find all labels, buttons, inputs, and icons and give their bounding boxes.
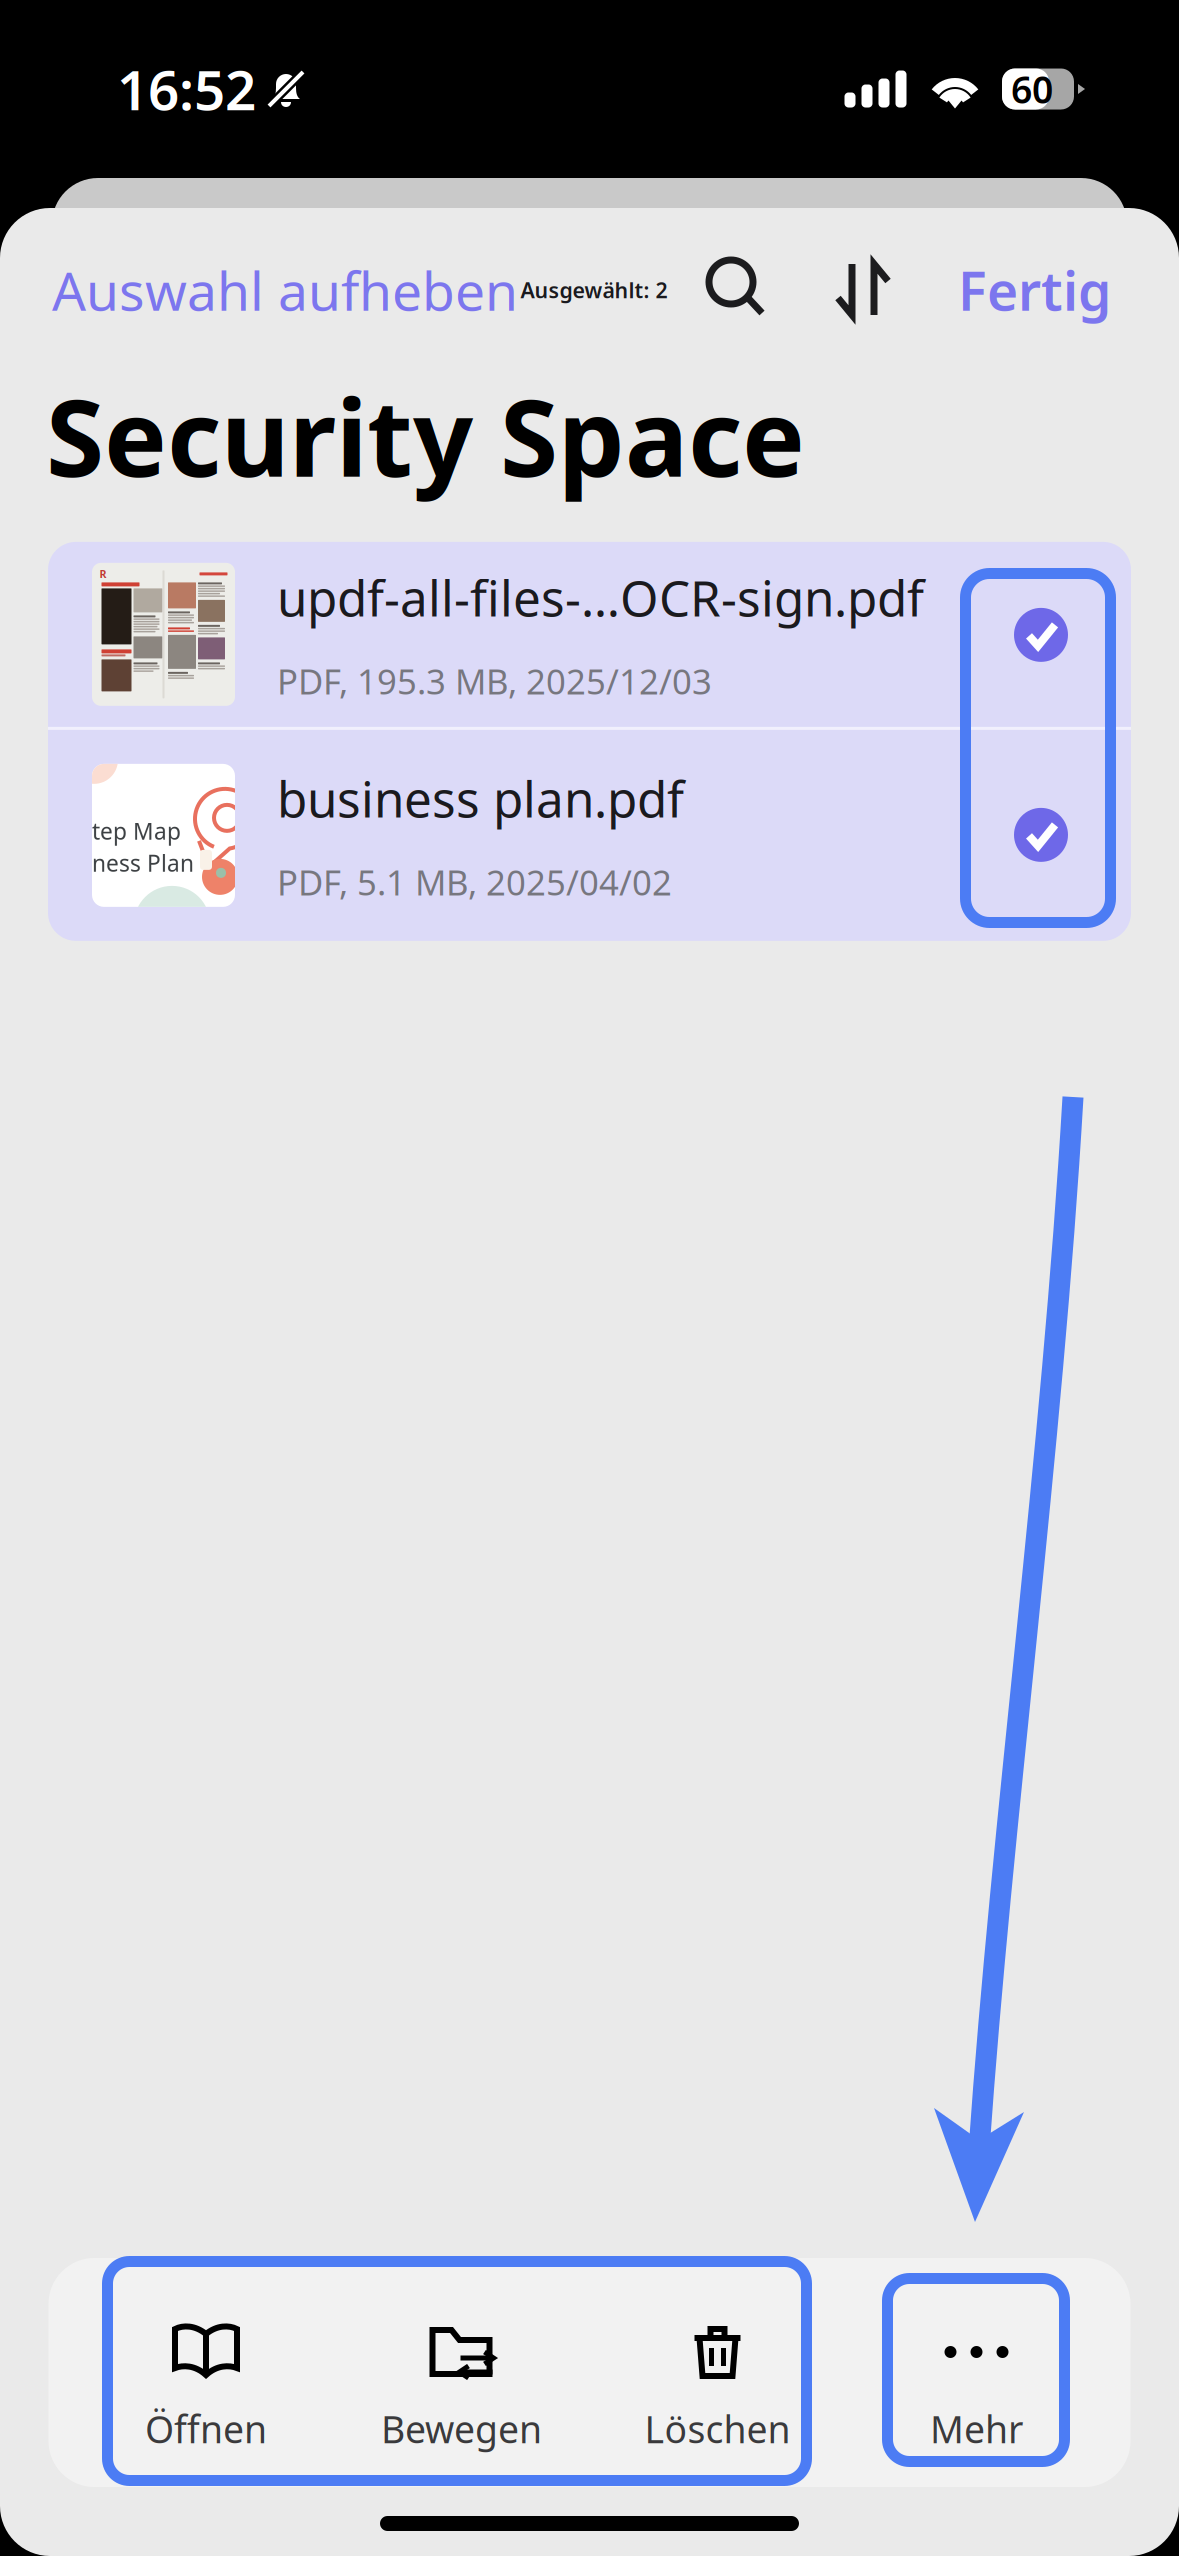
button[interactable]: Sortieren <box>802 238 924 342</box>
staticText: R <box>99 567 106 581</box>
button[interactable]: Bewegen <box>333 2258 589 2487</box>
staticText: PDF, 5.1 MB, 2025/04/02 <box>277 859 672 905</box>
button[interactable]: Suchen <box>674 238 802 342</box>
staticText: tep Map <box>92 816 181 846</box>
staticText: 60 <box>1011 64 1053 114</box>
staticText: Mehr <box>930 2404 1023 2454</box>
staticText: Öffnen <box>145 2404 267 2454</box>
staticText: PDF, 195.3 MB, 2025/12/03 <box>277 658 712 704</box>
staticText: Bewegen <box>381 2404 542 2454</box>
staticText: Auswahl aufheben <box>52 255 518 325</box>
button[interactable]: Ausgewählt: 2 <box>514 238 674 342</box>
button[interactable]: R <box>48 542 1131 727</box>
staticText: Fertig <box>958 255 1111 325</box>
button[interactable]: tep Map <box>48 730 1131 941</box>
staticText: ness Plan <box>92 848 194 878</box>
button[interactable]: Auswahl aufheben <box>52 238 514 342</box>
staticText: business plan.pdf <box>277 766 684 831</box>
button[interactable]: Mehr <box>882 2258 1070 2487</box>
button[interactable]: Öffnen <box>78 2258 333 2487</box>
staticText: Löschen <box>644 2404 790 2454</box>
staticText: 16:52 <box>117 53 256 125</box>
staticText: Ausgewählt: 2 <box>520 276 667 304</box>
button[interactable]: Löschen <box>589 2258 845 2487</box>
staticText: updf-all-files-…OCR-sign.pdf <box>277 565 924 630</box>
button[interactable]: Fertig <box>924 238 1111 342</box>
staticText: Security Space <box>46 366 805 506</box>
